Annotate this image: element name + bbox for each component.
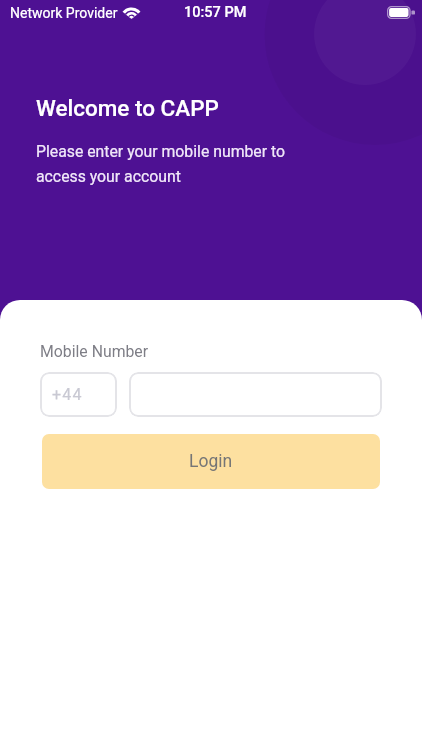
button[interactable]: +44: [40, 372, 117, 417]
staticText: Please enter your mobile number to acces…: [36, 142, 292, 186]
staticText: +44: [52, 385, 83, 404]
staticText: Login: [189, 451, 233, 472]
other: Wi-Fi: [122, 4, 141, 18]
staticText: 10:57 PM: [184, 4, 247, 21]
other: Battery: [387, 6, 415, 19]
button[interactable]: Mobile number input: [129, 372, 382, 417]
button[interactable]: Login: [42, 434, 380, 489]
staticText: Network Provider: [10, 5, 118, 21]
staticText: Welcome to CAPP: [36, 95, 219, 121]
staticText: Mobile Number: [40, 342, 149, 361]
